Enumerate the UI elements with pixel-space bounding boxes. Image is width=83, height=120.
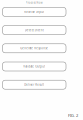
staticText: Deliver Result bbox=[24, 83, 44, 86]
button[interactable]: Detect Intent bbox=[2, 26, 66, 35]
staticText: Process Flow bbox=[25, 1, 42, 4]
staticText: FIG. 2 bbox=[68, 113, 78, 118]
staticText: Validate Output bbox=[23, 65, 45, 68]
staticText: Receive Input bbox=[24, 10, 44, 14]
button[interactable]: Validate Output bbox=[2, 62, 66, 71]
button[interactable]: Generate Response bbox=[2, 44, 66, 53]
staticText: Detect Intent bbox=[25, 28, 44, 32]
button[interactable]: Deliver Result bbox=[2, 80, 66, 89]
button[interactable]: Receive Input bbox=[2, 7, 66, 16]
staticText: Generate Response bbox=[20, 46, 48, 50]
